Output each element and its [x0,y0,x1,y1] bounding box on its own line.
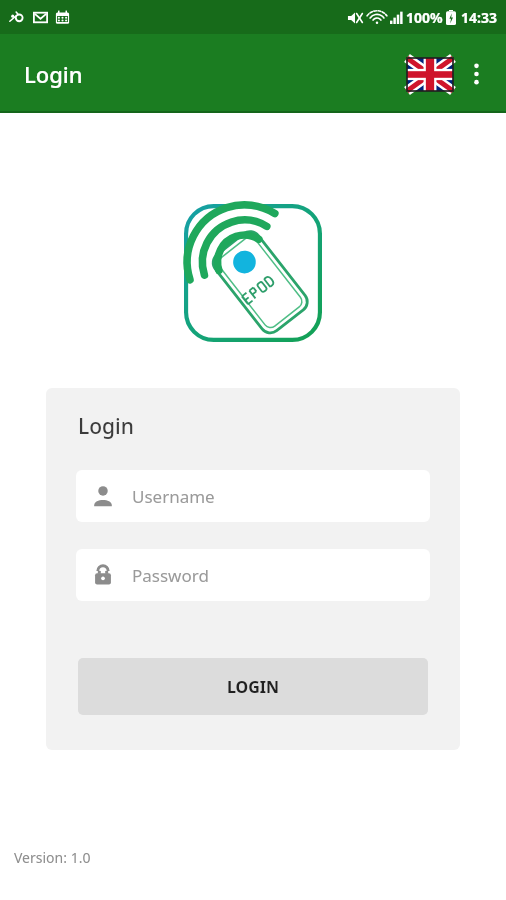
button[interactable]: Select language [406,50,454,98]
button[interactable]: Username [76,470,430,522]
button[interactable]: More options [454,52,498,96]
staticText: Login [78,412,134,441]
button[interactable]: LOGIN [78,658,428,715]
staticText: LOGIN [227,676,280,698]
staticText: 14:33 [461,8,497,27]
button[interactable]: Password [76,549,430,601]
staticText: Login [24,59,83,89]
staticText: 100% [406,8,443,27]
staticText: Password [132,564,209,587]
staticText: Version: 1.0 [14,848,91,867]
staticText: Username [132,485,215,508]
